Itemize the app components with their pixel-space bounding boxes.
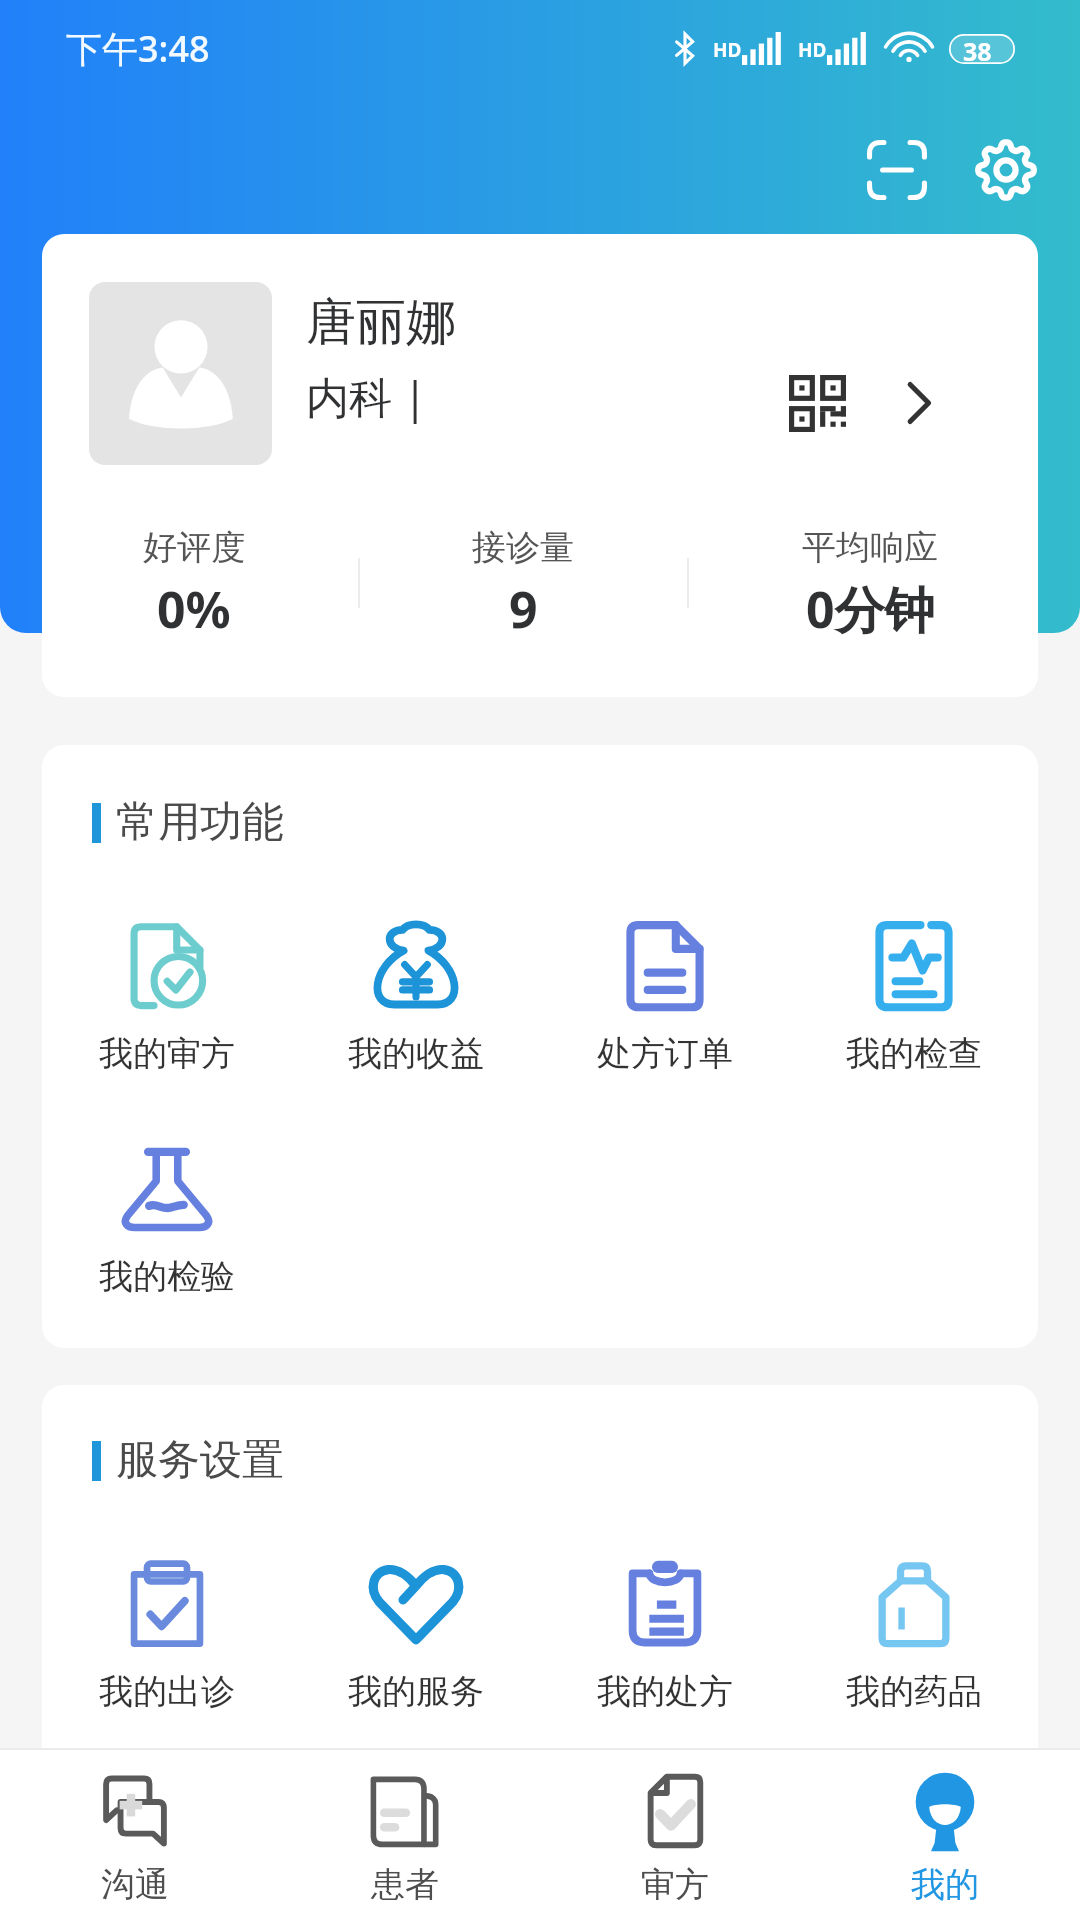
button[interactable]: 我的检验 [42, 1142, 291, 1298]
staticText: 我的审方 [99, 1032, 235, 1075]
button[interactable]: 我的服务 [291, 1557, 540, 1713]
staticText: 我的检查 [846, 1032, 982, 1075]
staticText: 处方订单 [597, 1032, 733, 1075]
staticText: 患者 [371, 1863, 439, 1906]
button[interactable]: 我的审方 [42, 919, 291, 1075]
button[interactable]: 唐丽娜 [42, 234, 1038, 697]
staticText: 38 [963, 34, 992, 64]
button[interactable]: 我的出诊 [42, 1557, 291, 1713]
staticText: 9 [509, 575, 538, 643]
staticText: HD [713, 37, 742, 63]
staticText: 审方 [641, 1863, 709, 1906]
staticText: 我的处方 [597, 1670, 733, 1713]
staticText: 我的药品 [846, 1670, 982, 1713]
button[interactable]: Profile detail [889, 373, 949, 433]
button[interactable]: QR code [784, 370, 850, 436]
staticText: 我的检验 [99, 1255, 235, 1298]
staticText: 内科 | [306, 367, 427, 426]
button[interactable]: 患者 [270, 1750, 540, 1920]
staticText: 我的出诊 [99, 1670, 235, 1713]
staticText: 服务设置 [116, 1434, 284, 1487]
staticText: 我的 [911, 1863, 979, 1906]
button[interactable]: 我的药品 [789, 1557, 1038, 1713]
button[interactable]: 我的 [810, 1750, 1080, 1920]
staticText: 常用功能 [116, 796, 284, 849]
staticText: 唐丽娜 [306, 291, 456, 354]
staticText: HD [798, 37, 827, 63]
button[interactable]: Settings [961, 125, 1051, 215]
staticText: 接诊量 [472, 526, 574, 569]
staticText: 我的服务 [348, 1670, 484, 1713]
staticText: 我的收益 [348, 1032, 484, 1075]
staticText: 平均响应 [802, 526, 938, 569]
staticText: 0% [157, 575, 231, 643]
staticText: 下午3:48 [66, 24, 210, 73]
button[interactable]: 我的处方 [540, 1557, 789, 1713]
staticText: 沟通 [101, 1863, 169, 1906]
button[interactable]: Scan [852, 125, 942, 215]
button[interactable]: 我的收益 [291, 919, 540, 1075]
button[interactable]: 我的检查 [789, 919, 1038, 1075]
button[interactable]: 审方 [540, 1750, 810, 1920]
staticText: 0分钟 [806, 575, 935, 643]
button[interactable]: 沟通 [0, 1750, 270, 1920]
staticText: 好评度 [143, 526, 245, 569]
button[interactable]: 处方订单 [540, 919, 789, 1075]
